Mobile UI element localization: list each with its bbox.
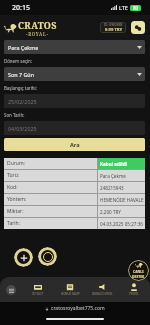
button[interactable]: WhatsApp xyxy=(38,247,57,266)
staticText: 248215943 xyxy=(100,185,124,191)
staticText: Türü: xyxy=(7,172,20,179)
staticText: 2.200 TRY xyxy=(100,209,121,215)
staticText: Başlangıç tarihi: xyxy=(4,85,37,91)
button[interactable]: PROFİL xyxy=(118,277,150,302)
staticText: 3D SLOT xyxy=(32,292,43,296)
button[interactable]: Canli Destek xyxy=(128,260,149,281)
staticText: Son 7 Gün xyxy=(8,71,35,78)
staticText: Kod: xyxy=(7,184,18,191)
staticText: 04.03.2025 05:27:36 xyxy=(100,221,143,227)
staticText: 04/03/2025 xyxy=(8,125,37,132)
staticText: DESTEK xyxy=(132,274,145,279)
staticText: 80 xyxy=(133,5,139,11)
staticText: 0.99 TRY xyxy=(105,27,123,33)
staticText: Son Tarih: xyxy=(4,112,25,118)
staticText: Kabul edildi xyxy=(100,161,127,167)
staticText: Ara xyxy=(70,141,80,149)
staticText: Miktar: xyxy=(7,208,24,215)
button[interactable]: 3D SLOT xyxy=(21,277,54,302)
staticText: LTE xyxy=(119,4,128,11)
button[interactable]: 04/03/2025 xyxy=(4,121,145,135)
staticText: Dönem seçin: xyxy=(4,58,33,64)
staticText: cratosroyalbet775.com xyxy=(51,305,105,312)
staticText: PROFİL xyxy=(129,292,139,296)
staticText: 25/02/2025 xyxy=(8,98,37,105)
staticText: BONUS TALEP xyxy=(61,292,80,296)
button[interactable]: Son 7 Gün xyxy=(4,67,145,81)
staticText: Tarih: xyxy=(7,220,20,227)
staticText: BONUS DUYUR. xyxy=(92,292,113,296)
staticText: ID: 8982888 xyxy=(104,22,123,26)
staticText: CRATOS xyxy=(18,19,57,31)
staticText: 20:15 xyxy=(12,3,30,13)
staticText: Para Çekme xyxy=(100,173,126,179)
button[interactable]: 25/02/2025 xyxy=(4,94,145,108)
staticText: Durum: xyxy=(7,160,25,167)
button[interactable]: Para Çekme xyxy=(4,40,145,54)
button[interactable]: BONUS DUYUR. xyxy=(86,277,118,302)
button[interactable]: Yatirim yap xyxy=(14,248,33,267)
staticText: Yöntem: xyxy=(7,196,27,203)
button[interactable]: Deposit xyxy=(131,21,145,34)
staticText: Para Çekme xyxy=(8,44,39,51)
staticText: -ROYAL- xyxy=(26,31,49,37)
staticText: CANLI xyxy=(133,269,144,274)
staticText: HEMENÖDE HAVALE xyxy=(100,197,144,203)
button[interactable]: BONUS TALEP xyxy=(54,277,86,302)
button[interactable]: Menu xyxy=(0,277,21,302)
button[interactable]: ID: 8982888 xyxy=(100,22,126,33)
button[interactable]: Ara xyxy=(4,138,145,151)
